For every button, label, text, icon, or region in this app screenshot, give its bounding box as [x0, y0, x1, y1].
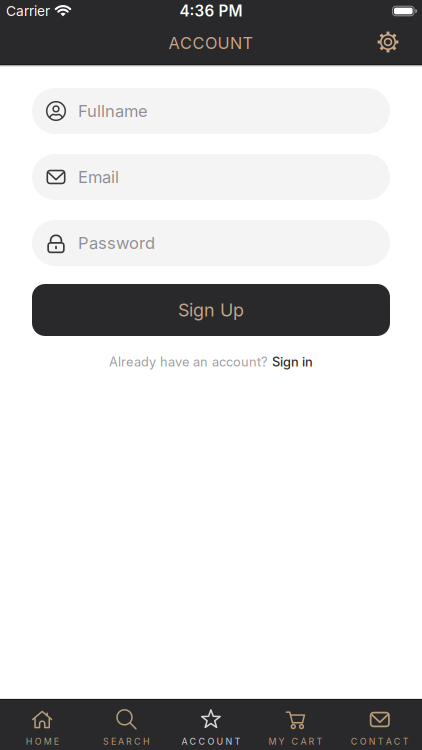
staticText: C O N T A C T: [351, 736, 409, 747]
staticText: S E A R C H: [103, 736, 150, 747]
staticText: Email: [78, 167, 119, 187]
button[interactable]: Password: [32, 220, 390, 266]
button[interactable]: Sign in: [272, 354, 313, 369]
staticText: Already have an account?: [109, 354, 268, 369]
button[interactable]: M Y C A R T: [253, 700, 338, 750]
staticText: A C C O U N T: [181, 736, 240, 747]
staticText: 4:36 PM: [179, 2, 242, 20]
button[interactable]: H O M E: [0, 700, 84, 750]
staticText: Sign in: [272, 354, 313, 369]
staticText: Sign Up: [178, 299, 244, 321]
button[interactable]: Email: [32, 154, 390, 200]
staticText: Password: [78, 233, 155, 253]
button[interactable]: S E A R C H: [84, 700, 169, 750]
button[interactable]: Fullname: [32, 88, 390, 134]
staticText: M Y C A R T: [268, 736, 322, 747]
staticText: Carrier: [6, 3, 50, 19]
staticText: Fullname: [78, 101, 148, 121]
button[interactable]: Sign Up: [32, 284, 390, 336]
button[interactable]: [376, 30, 400, 54]
staticText: H O M E: [26, 736, 59, 747]
button[interactable]: A C C O U N T: [169, 700, 253, 750]
staticText: ACCOUNT: [168, 33, 253, 53]
button[interactable]: C O N T A C T: [338, 700, 422, 750]
